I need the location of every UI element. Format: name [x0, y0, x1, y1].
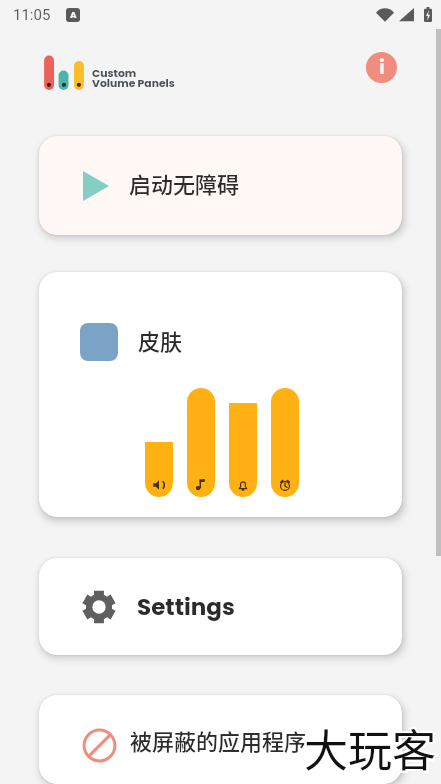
staticText: A: [70, 9, 77, 22]
button[interactable]: Blocked apps: [39, 695, 402, 784]
button[interactable]: 启动无障碍: [39, 136, 402, 235]
staticText: 大玩客: [304, 716, 436, 780]
button[interactable]: Settings: [82, 590, 116, 624]
button[interactable]: Info: [366, 52, 397, 83]
staticText: i: [379, 54, 385, 81]
staticText: 11:05: [13, 6, 51, 24]
button[interactable]: Skin colour: [39, 272, 402, 517]
staticText: 被屏蔽的应用程序: [130, 724, 307, 756]
staticText: Settings: [137, 591, 235, 623]
staticText: 启动无障碍: [129, 167, 240, 199]
staticText: 大玩客: [304, 716, 436, 780]
button[interactable]: vol: [145, 442, 173, 497]
button[interactable]: music: [187, 388, 215, 497]
button[interactable]: Blocked apps: [82, 728, 117, 763]
staticText: 皮肤: [138, 324, 183, 356]
button[interactable]: bell: [229, 403, 257, 497]
button[interactable]: Skin colour: [80, 323, 118, 361]
button[interactable]: Settings: [39, 558, 402, 655]
button[interactable]: alarm: [271, 388, 299, 497]
staticText: Custom Volume Panels: [92, 66, 175, 91]
